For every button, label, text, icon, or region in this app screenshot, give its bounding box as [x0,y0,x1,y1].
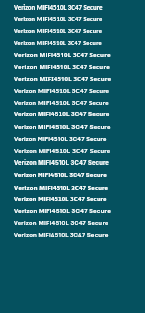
staticText: Verizon MIFI4510L 3C47 Secure [14,3,103,11]
staticText: Verizon MIFI4510L 3C47 Secure [14,99,109,106]
staticText: Verizon MIFI4510L 3C47 Secure [14,183,109,193]
staticText: Verizon MIFI4510L 3C47 Secure [14,207,111,215]
staticText: Verizon MIFI4510L 3C47 Secure [14,111,110,118]
staticText: Verizon MIFI4510L 3C47 Secure [14,159,109,166]
staticText: Verizon MIFI4510L 3C47 Secure [14,123,111,130]
staticText: Verizon MIFI4510L 3C47 Secure [14,15,103,23]
staticText: Verizon MIFI4510L 3C47 Secure [14,51,111,59]
staticText: Verizon MIFI4510L 3C47 Secure [14,219,109,226]
staticText: Verizon MIFI4510L 3C47 Secure [14,231,109,239]
staticText: Verizon MIFI4510L 3C47 Secure [14,87,110,94]
staticText: Verizon MIFI4510L 3C47 Secure [14,39,102,46]
staticText: Verizon MIFI4510L 3C47 Secure [14,75,112,83]
staticText: Verizon MIFI4510L 3C47 Secure [14,147,111,155]
staticText: Verizon MIFI4510L 3C47 Secure [14,135,107,142]
staticText: Verizon MIFI4510L 3C47 Secure [14,195,107,202]
staticText: Verizon MIFI4510L 3C47 Secure [14,63,110,71]
staticText: Verizon MIFI4510L 3C47 Secure [14,27,103,35]
staticText: Verizon MIFI4510L 3C47 Secure [14,171,108,179]
